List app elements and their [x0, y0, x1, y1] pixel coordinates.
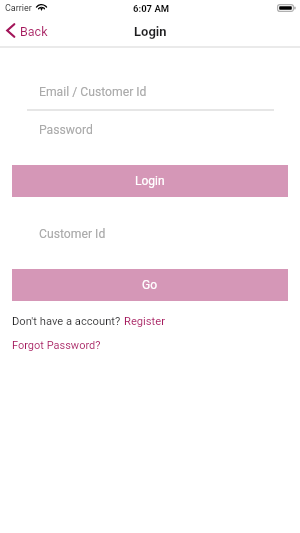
- staticText: Carrier: [5, 3, 32, 14]
- staticText: Login: [135, 174, 165, 188]
- button[interactable]: Email / Customer Id: [12, 77, 288, 107]
- button[interactable]: Forgot Password?: [12, 335, 101, 353]
- button[interactable]: Login: [12, 165, 288, 197]
- other: Back: [6, 24, 15, 39]
- button[interactable]: Go: [12, 269, 288, 301]
- button[interactable]: Back: [6, 24, 48, 39]
- staticText: Go: [142, 278, 158, 292]
- staticText: 6:07 AM: [133, 3, 170, 14]
- button[interactable]: Customer Id: [12, 219, 288, 249]
- staticText: Login: [134, 24, 167, 39]
- staticText: Password: [39, 123, 93, 137]
- staticText: Back: [20, 24, 48, 39]
- staticText: Email / Customer Id: [39, 85, 147, 99]
- button[interactable]: Password: [12, 115, 288, 145]
- button[interactable]: Register: [124, 314, 165, 328]
- staticText: Register: [124, 315, 165, 328]
- staticText: Customer Id: [39, 227, 106, 241]
- staticText: Forgot Password?: [12, 339, 101, 352]
- staticText: Don't have a account?: [12, 315, 124, 328]
